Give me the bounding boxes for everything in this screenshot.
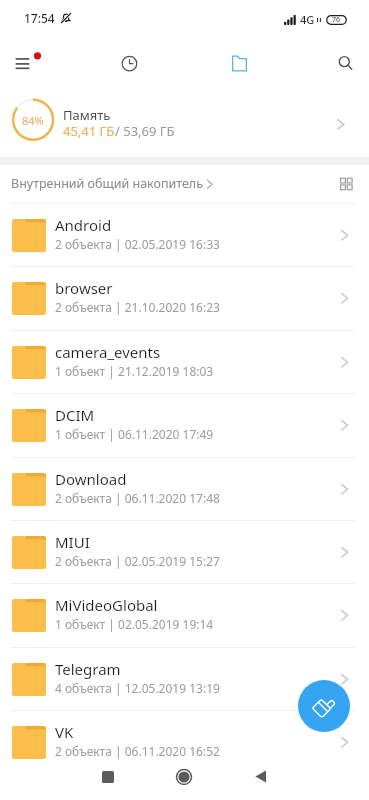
staticText: 4 объекта | 12.05.2019 13:19 [55,680,220,696]
button[interactable]: MiVideoGlobal [0,584,369,646]
staticText: Android [55,215,112,235]
staticText: Download [55,469,127,489]
staticText: browser [55,278,113,298]
staticText: Память [63,106,111,124]
button[interactable]: camera_events [0,331,369,393]
staticText: camera_events [55,342,161,362]
button[interactable]: Search [322,41,367,86]
staticText: 1 объект | 06.11.2020 17:49 [55,426,214,442]
button[interactable]: Clean up [298,680,350,732]
button[interactable]: Android [0,204,369,266]
button[interactable]: 84% [0,92,369,157]
staticText: 84% [22,113,44,128]
staticText: Внутренний общий накопитель [11,175,203,192]
staticText: 2 объекта | 06.11.2020 17:48 [55,490,220,506]
staticText: Telegram [55,659,121,679]
button[interactable]: DCIM [0,394,369,456]
staticText: MIUI [55,532,90,552]
button[interactable]: VK [0,711,369,759]
button[interactable]: Download [0,458,369,520]
staticText: 2 объекта | 02.05.2019 15:27 [55,553,220,569]
staticText: 2 объекта | 21.10.2020 16:23 [55,299,220,315]
button[interactable]: Menu [2,41,46,85]
button[interactable]: Recents [86,756,130,797]
button[interactable]: Recent files [107,41,152,86]
staticText: VK [55,722,74,742]
staticText: 1 объект | 02.05.2019 19:14 [55,616,214,632]
button[interactable]: Files [217,41,262,86]
button[interactable]: Grid view [329,167,363,201]
staticText: 4G [300,12,315,27]
staticText: 2 объекта | 02.05.2019 16:33 [55,236,220,252]
button[interactable]: Home [162,756,206,797]
button[interactable]: Внутренний общий накопитель [11,175,214,192]
staticText: 1 объект | 21.12.2019 18:03 [55,363,214,379]
staticText: 17:54 [24,10,55,26]
staticText: 2 объекта | 06.11.2020 16:52 [55,743,220,759]
staticText: 76 [332,15,341,25]
staticText: / 53,69 ГБ [115,122,175,140]
staticText: DCIM [55,405,95,425]
button[interactable]: MIUI [0,521,369,583]
staticText: MiVideoGlobal [55,595,158,615]
button[interactable]: Back [238,756,282,797]
button[interactable]: browser [0,267,369,329]
button[interactable]: Telegram [0,648,369,710]
staticText: 45,41 ГБ [63,122,115,140]
